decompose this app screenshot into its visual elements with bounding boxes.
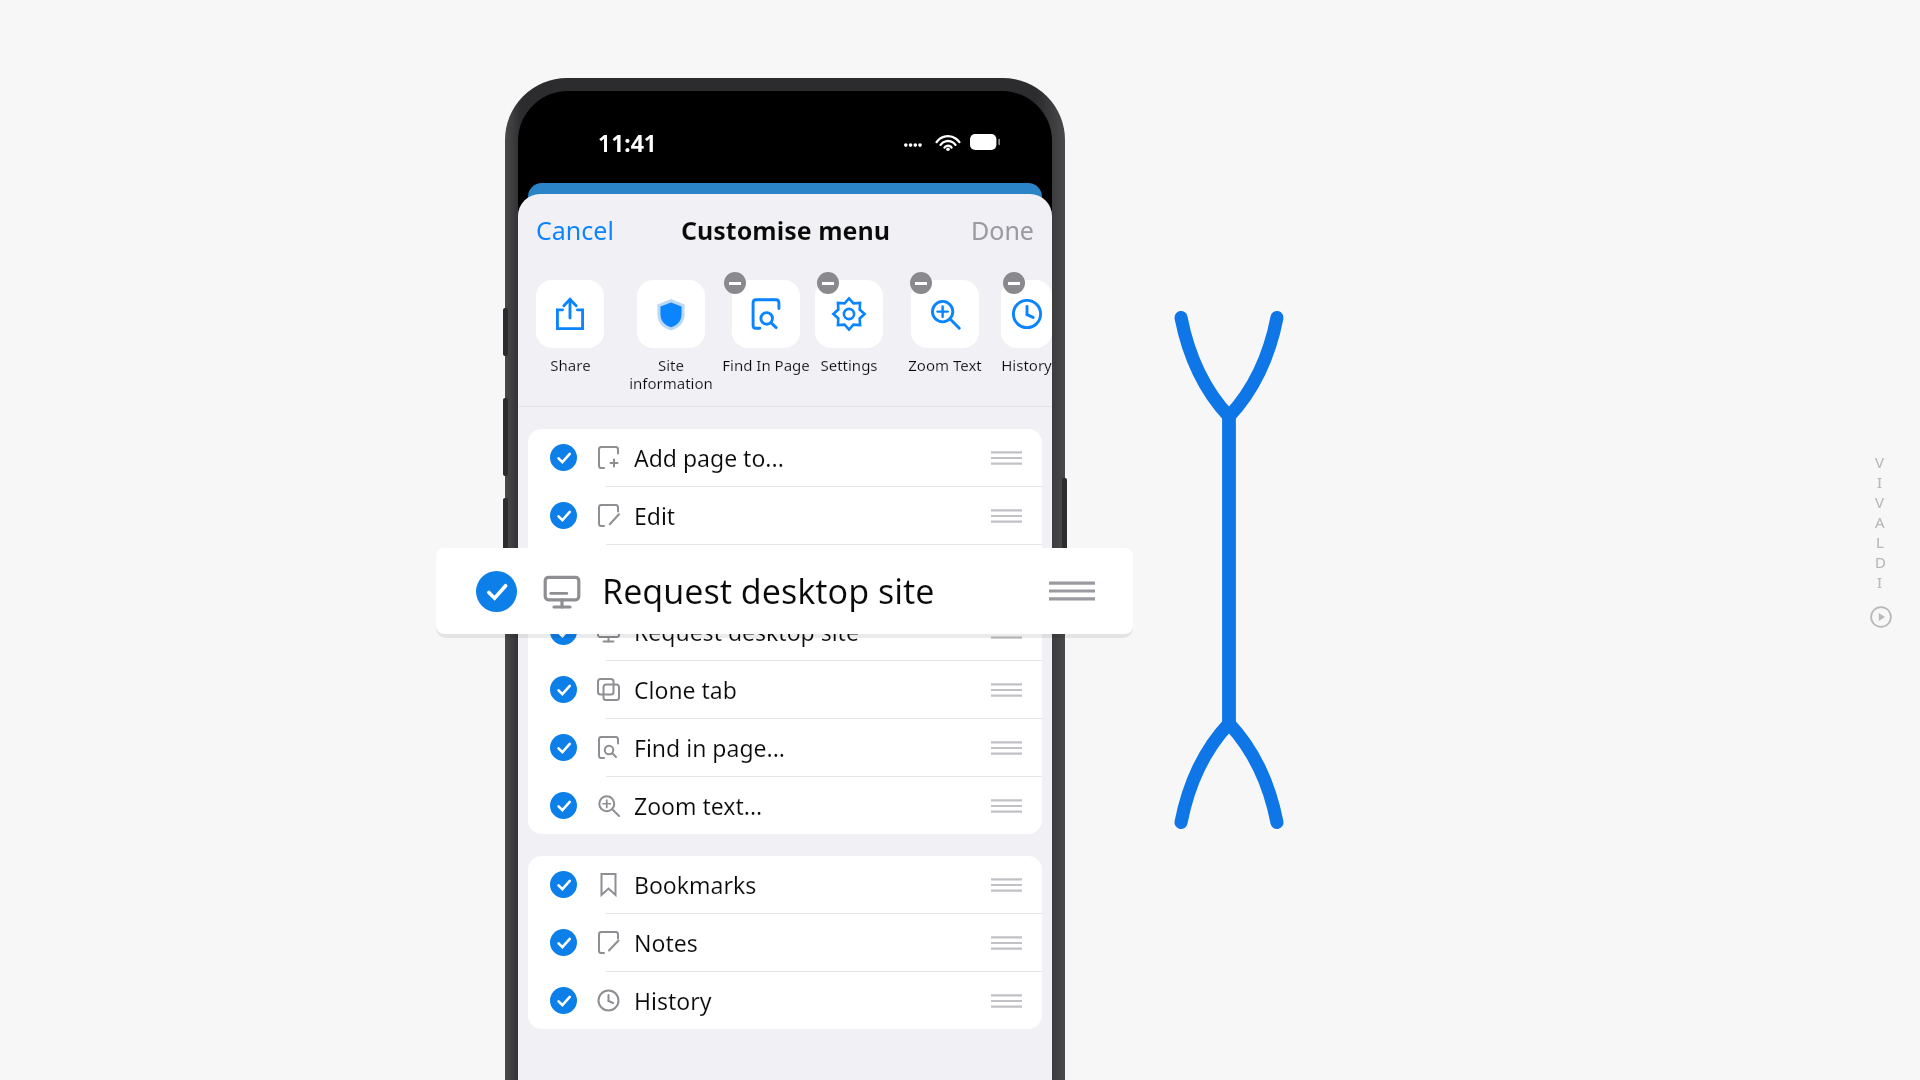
staticText: Request desktop site [602, 568, 935, 614]
button[interactable]: Site information [629, 266, 713, 394]
button[interactable]: Request desktop site [528, 603, 1042, 660]
staticText: I [1877, 472, 1885, 492]
button[interactable]: Clone tab [528, 661, 1042, 718]
staticText: Delete browsing data [634, 558, 865, 589]
button[interactable]: Remove Settings [817, 272, 839, 294]
other: Reorder Zoom text... [991, 796, 1022, 816]
button[interactable]: Request desktop site [436, 548, 1133, 634]
button[interactable]: History [528, 972, 1042, 1029]
staticText: Zoom Text [908, 355, 982, 375]
staticText: Request desktop site [634, 616, 859, 647]
staticText: Find In Page [722, 355, 810, 375]
button[interactable]: Notes [528, 914, 1042, 971]
other: Reorder Clone tab [991, 680, 1022, 700]
staticText: Zoom text... [634, 790, 763, 821]
button[interactable]: Add page to... [528, 429, 1042, 486]
other: Reorder Request desktop site [991, 622, 1022, 642]
staticText: Find in page... [634, 732, 785, 763]
staticText: Edit [634, 500, 676, 531]
button[interactable]: History [1001, 266, 1052, 375]
button[interactable]: Done [953, 205, 1052, 255]
button[interactable]: Find In Page [722, 266, 810, 375]
staticText: Clone tab [634, 674, 737, 705]
staticText: I [1877, 572, 1885, 592]
button[interactable]: Delete browsing data [528, 545, 1042, 602]
staticText: 11:41 [598, 127, 657, 158]
staticText: Share [550, 355, 591, 375]
button[interactable]: Remove History [1003, 272, 1025, 294]
other: Reorder Request desktop site [1049, 577, 1095, 605]
other: Reorder History [991, 991, 1022, 1011]
other: Reorder Bookmarks [991, 875, 1022, 895]
other: Reorder Notes [991, 933, 1022, 953]
button[interactable]: Edit [528, 487, 1042, 544]
button[interactable]: Bookmarks [528, 856, 1042, 913]
button[interactable]: Remove Find In Page [724, 272, 746, 294]
staticText: Bookmarks [634, 869, 757, 900]
button[interactable]: Find in page... [528, 719, 1042, 776]
button[interactable]: Zoom Text [908, 266, 982, 375]
button[interactable]: Zoom text... [528, 777, 1042, 834]
staticText: V [1875, 492, 1887, 512]
button[interactable]: Settings [815, 266, 883, 375]
other: Reorder Add page to... [991, 448, 1022, 468]
staticText: Site information [629, 355, 713, 394]
staticText: History [634, 985, 712, 1016]
button[interactable]: Cancel [518, 205, 632, 255]
staticText: Notes [634, 927, 698, 958]
staticText: Add page to... [634, 442, 784, 473]
staticText: Customise menu [681, 213, 890, 247]
staticText: D [1875, 552, 1888, 572]
staticText: History [1001, 355, 1052, 375]
button[interactable]: Share [536, 266, 604, 375]
other: Reorder Edit [991, 506, 1022, 526]
staticText: Settings [820, 355, 878, 375]
staticText: V [1875, 452, 1887, 472]
staticText: Done [971, 213, 1034, 247]
staticText: A [1875, 512, 1887, 532]
staticText: L [1876, 532, 1886, 552]
staticText: Cancel [536, 213, 614, 247]
button[interactable]: Remove Zoom Text [910, 272, 932, 294]
other: Reorder Find in page... [991, 738, 1022, 758]
